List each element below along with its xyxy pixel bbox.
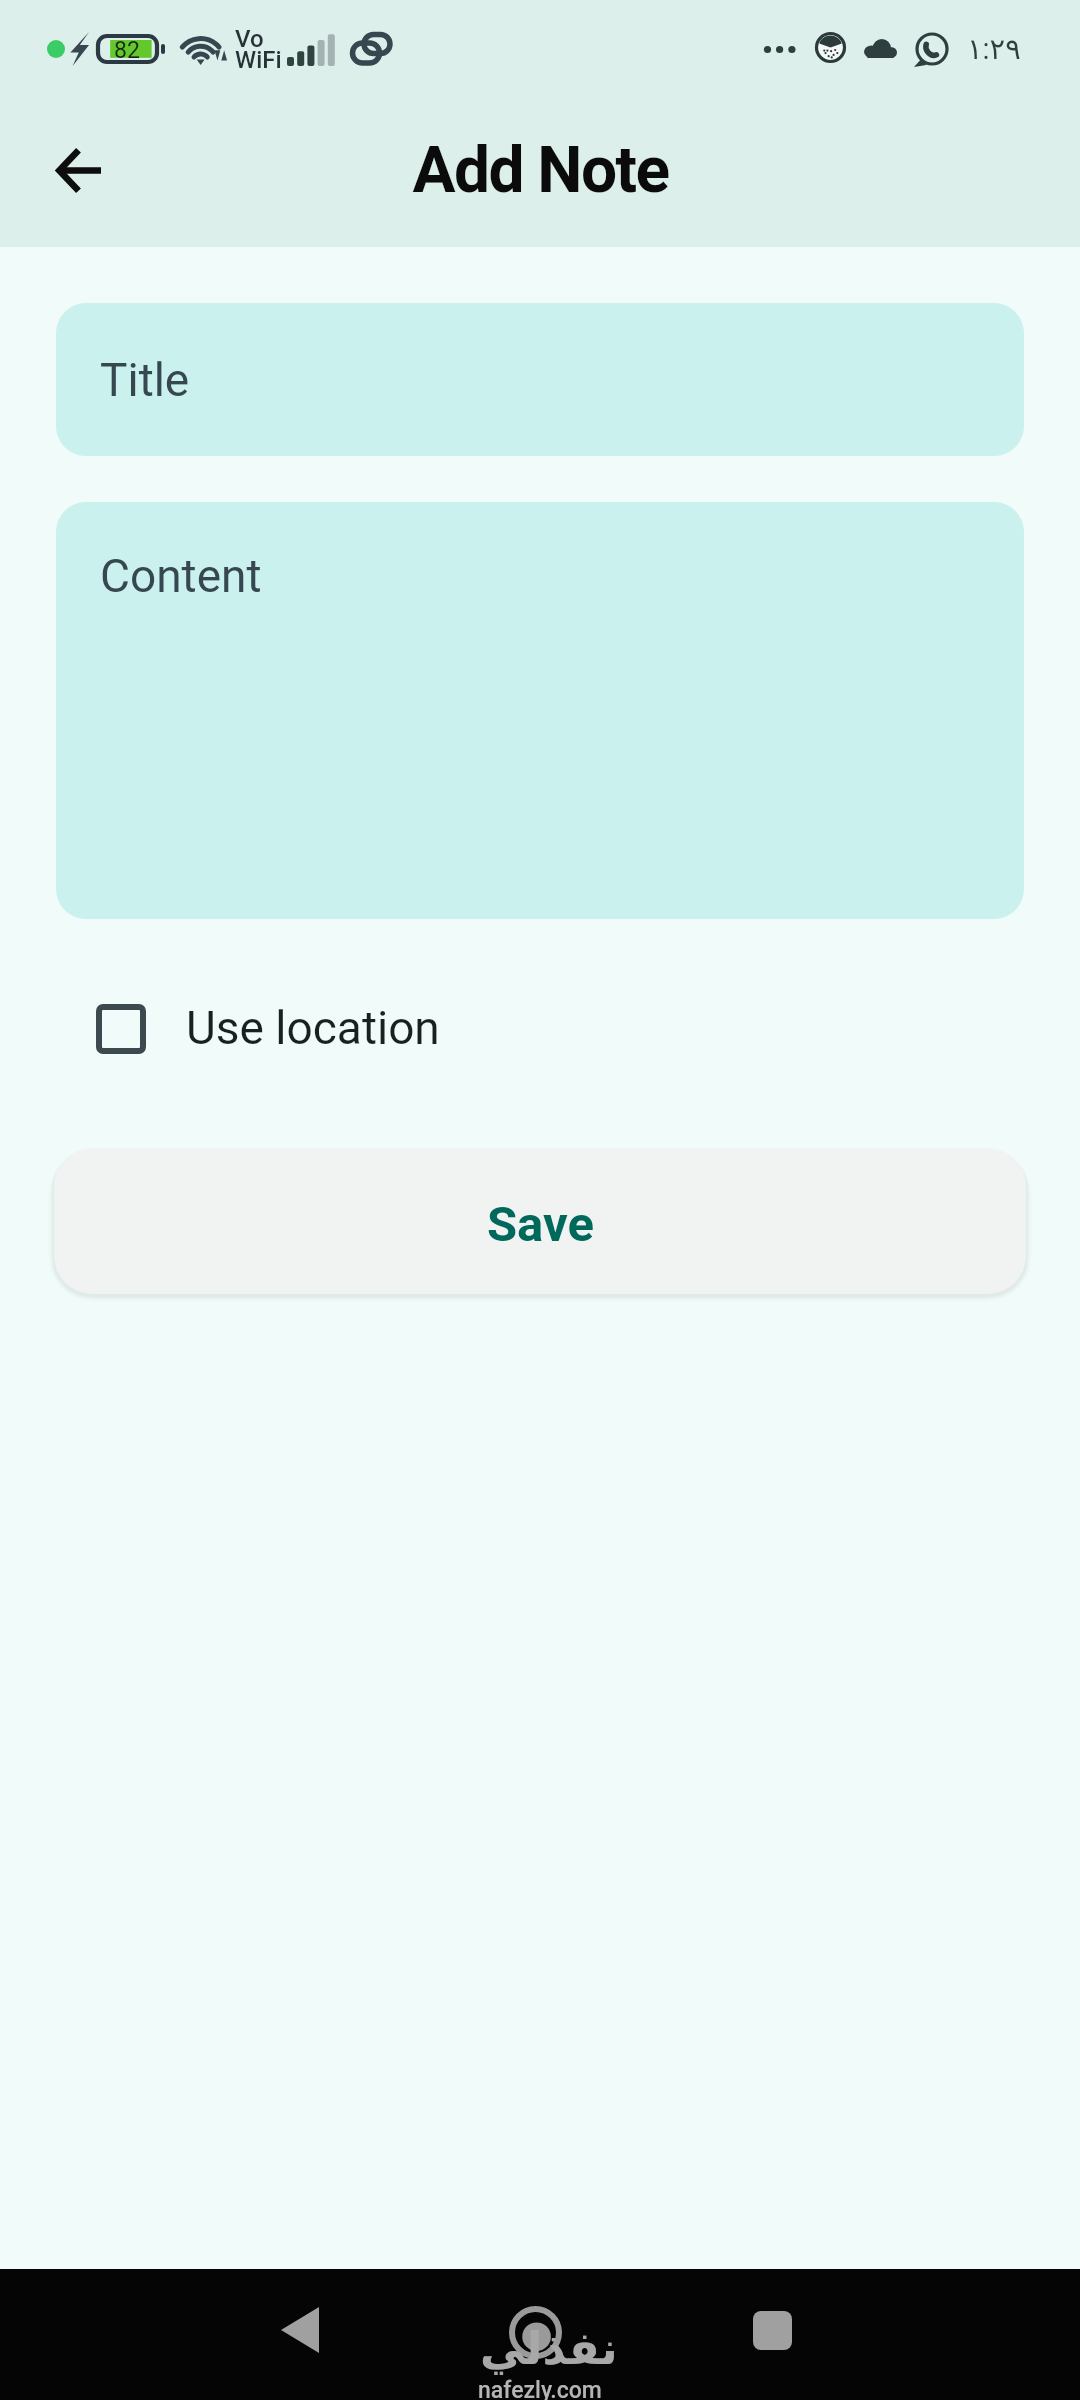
- staticText: 82: [114, 37, 140, 64]
- staticText: Use location: [186, 1001, 440, 1055]
- staticText: ١:٢٩: [967, 32, 1021, 66]
- staticText: Title: [100, 353, 190, 407]
- button[interactable]: Title: [56, 303, 1024, 456]
- button[interactable]: Save: [54, 1148, 1026, 1294]
- staticText: Save: [487, 1196, 594, 1253]
- button[interactable]: Back: [255, 2285, 345, 2375]
- button[interactable]: Content: [56, 502, 1024, 919]
- button[interactable]: Back: [22, 119, 132, 229]
- staticText: نفذلي: [480, 2322, 618, 2374]
- staticText: Content: [100, 549, 262, 603]
- staticText: WiFi: [235, 46, 282, 74]
- button[interactable]: Recents: [727, 2285, 817, 2375]
- staticText: nafezly.com: [478, 2377, 602, 2400]
- staticText: Add Note: [412, 133, 669, 208]
- staticText: Vo: [235, 25, 264, 53]
- button[interactable]: Use location: [96, 974, 440, 1084]
